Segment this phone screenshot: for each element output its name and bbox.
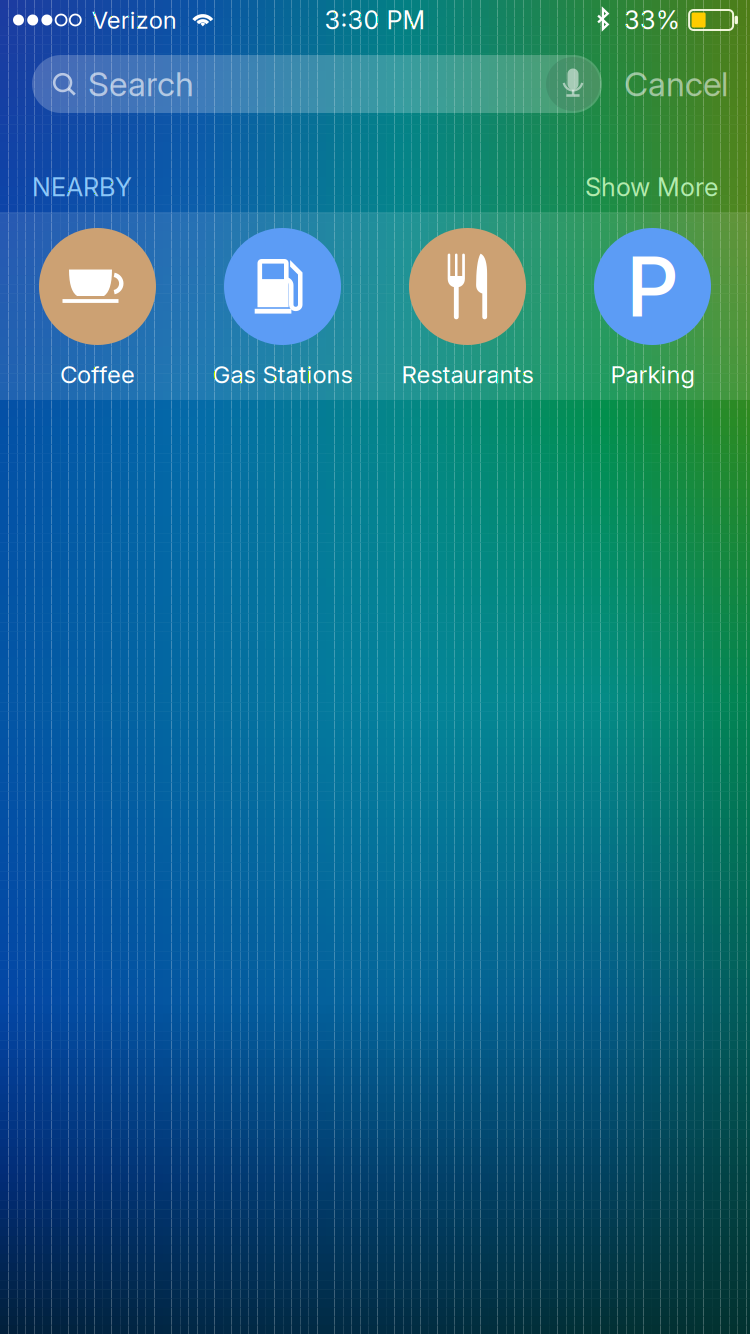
button[interactable]: P — [560, 228, 745, 386]
staticText: Show More — [585, 172, 718, 202]
staticText: P — [626, 236, 679, 336]
button[interactable]: Cancel — [602, 55, 750, 113]
staticText: Parking — [610, 360, 694, 389]
button[interactable]: Restaurants — [375, 228, 560, 386]
button[interactable]: Gas Stations — [190, 228, 375, 386]
button[interactable]: Coffee — [5, 228, 190, 386]
staticText: Restaurants — [401, 360, 533, 389]
staticText: 3:30 PM — [324, 5, 425, 35]
staticText: 33% — [624, 5, 680, 35]
staticText: Gas Stations — [212, 360, 352, 389]
button[interactable]: Show More — [585, 172, 750, 202]
staticText: Search — [88, 64, 194, 104]
button[interactable]: Search — [32, 55, 602, 113]
staticText: NEARBY — [32, 172, 132, 202]
staticText: Coffee — [60, 360, 135, 389]
staticText: Cancel — [624, 64, 728, 104]
staticText: Verizon — [92, 5, 177, 34]
